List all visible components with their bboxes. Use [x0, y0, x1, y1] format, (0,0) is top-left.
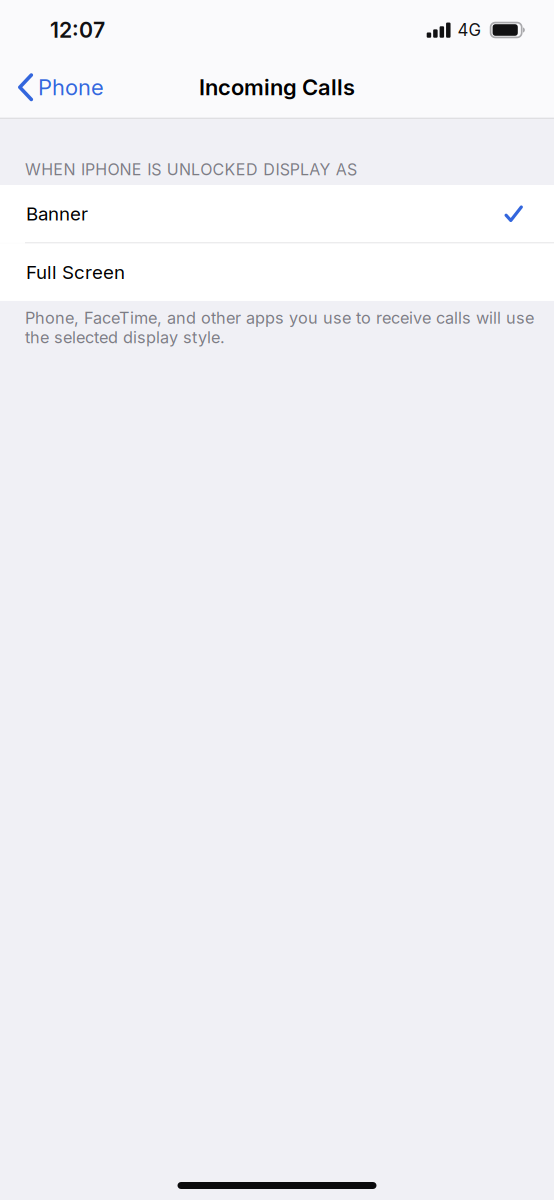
button[interactable]: Back to Phone — [0, 60, 110, 114]
staticText: Phone, FaceTime, and other apps you use … — [25, 308, 534, 347]
staticText: 12:07 — [50, 17, 105, 43]
staticText: Incoming Calls — [199, 74, 355, 100]
staticText: Banner — [26, 202, 88, 225]
button[interactable]: Full Screen — [0, 243, 554, 301]
button[interactable]: Banner — [0, 185, 554, 242]
staticText: 4G — [458, 20, 482, 40]
staticText: Full Screen — [26, 261, 125, 283]
staticText: Phone — [38, 74, 104, 100]
staticText: WHEN IPHONE IS UNLOCKED DISPLAY AS — [25, 160, 357, 179]
